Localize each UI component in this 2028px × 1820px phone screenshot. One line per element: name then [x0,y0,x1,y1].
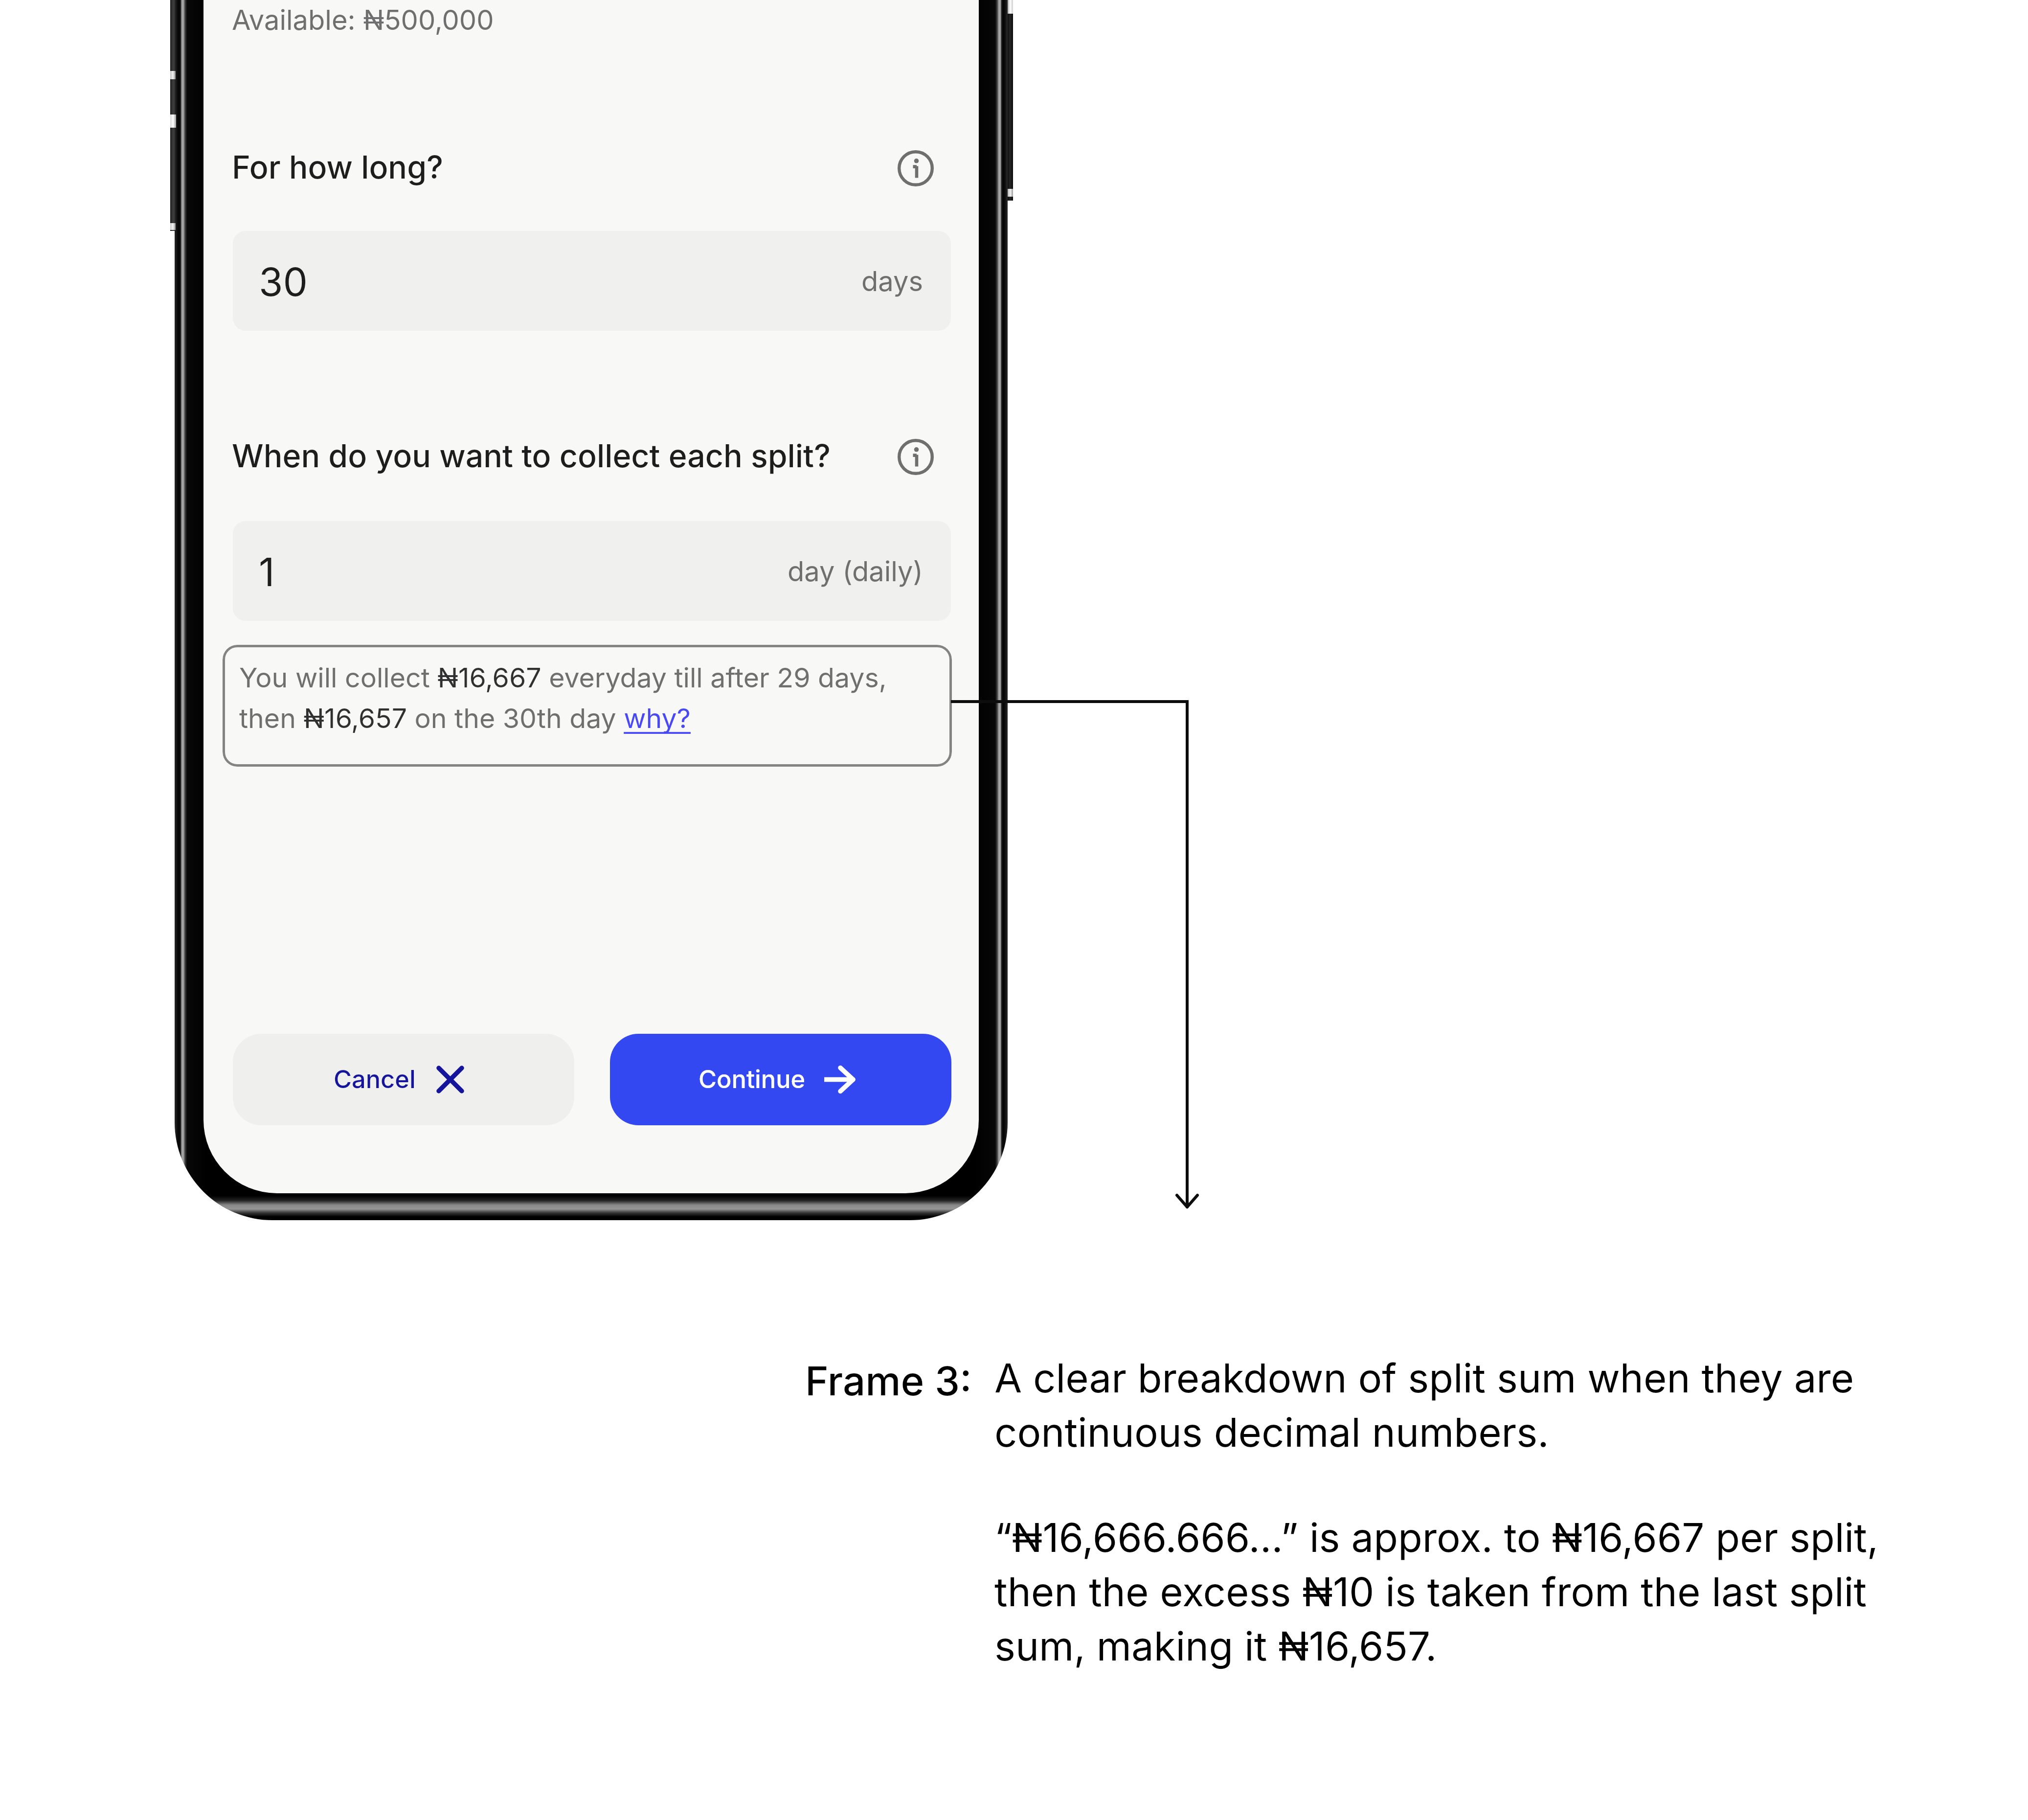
button[interactable]: More information [897,149,935,187]
staticText: 1 [259,548,275,595]
staticText: 30 [259,258,308,305]
staticText: For how long? [232,148,444,186]
other: Volume buttons [170,0,176,231]
staticText: days [861,265,923,298]
button[interactable]: You will collect ₦16,667 everyday till a… [223,645,952,767]
staticText: day (daily) [788,555,923,588]
button[interactable]: Continue [610,1034,951,1125]
staticText: A clear breakdown of split sum when they… [994,1354,1914,1456]
staticText: You will collect ₦16,667 everyday till a… [239,661,924,735]
button[interactable]: Cancel [233,1034,574,1125]
button[interactable]: 30 [233,231,951,331]
staticText: When do you want to collect each split? [232,437,831,475]
staticText: “₦16,666.666…” is approx. to ₦16,667 per… [994,1513,1914,1670]
button[interactable]: More information [897,438,935,476]
button[interactable]: 1 [233,521,951,621]
staticText: Available: ₦500,000 [232,3,494,37]
staticText: Cancel [334,1064,416,1094]
staticText: Continue [699,1064,806,1094]
other: Power [1008,0,1013,201]
staticText: Frame 3: [805,1357,972,1405]
